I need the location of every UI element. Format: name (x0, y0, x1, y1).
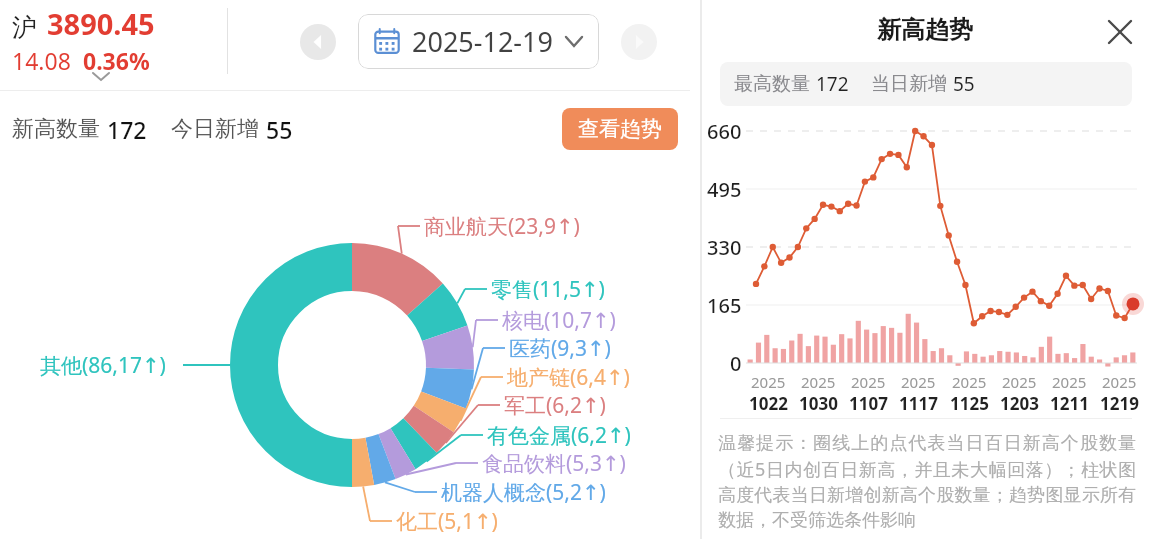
staticText: 2025 (851, 372, 886, 392)
staticText: 新高趋势 (877, 15, 973, 45)
staticText: 1203 (1000, 392, 1039, 415)
staticText: 地产链(6,4↑) (507, 363, 630, 392)
staticText: 55 (953, 71, 975, 97)
staticText: 商业航天(23,9↑) (424, 212, 580, 241)
staticText: 1211 (1050, 392, 1089, 415)
staticText: 660 (707, 118, 742, 145)
staticText: 有色金属(6,2↑) (487, 421, 631, 450)
staticText: 1022 (749, 392, 788, 415)
staticText: 2025 (952, 372, 987, 392)
staticText: 2025 (1052, 372, 1087, 392)
staticText: 1107 (849, 392, 888, 415)
button[interactable]: 查看趋势 (562, 108, 678, 150)
staticText: 军工(6,2↑) (504, 391, 606, 420)
staticText: 新高数量 (12, 115, 100, 143)
staticText: 食品饮料(5,3↑) (482, 449, 626, 478)
staticText: 3890.45 (47, 4, 155, 43)
staticText: 2025 (1002, 372, 1037, 392)
staticText: 14.08 (12, 45, 71, 76)
staticText: 其他(86,17↑) (40, 351, 166, 380)
staticText: 172 (816, 71, 849, 97)
staticText: 2025-12-19 (412, 23, 553, 60)
staticText: 2025 (901, 372, 936, 392)
staticText: 165 (707, 292, 742, 319)
staticText: 查看趋势 (578, 116, 662, 142)
staticText: 330 (707, 234, 742, 261)
staticText: 温馨提示：圈线上的点代表当日百日新高个股数量（近5日内创百日新高，并且未大幅回落… (718, 432, 1136, 531)
staticText: 1219 (1100, 392, 1139, 415)
staticText: 核电(10,7↑) (502, 306, 616, 335)
staticText: 1125 (950, 392, 989, 415)
button[interactable]: Previous day (300, 24, 336, 60)
staticText: 化工(5,1↑) (396, 507, 498, 536)
staticText: 1030 (799, 392, 838, 415)
staticText: 172 (107, 114, 147, 145)
staticText: 沪 (12, 12, 37, 43)
staticText: 0 (730, 350, 742, 377)
staticText: 0.36% (83, 45, 150, 76)
staticText: 1117 (899, 392, 938, 415)
button[interactable]: 2025-12-19 (358, 14, 599, 69)
staticText: 55 (266, 114, 293, 145)
staticText: 医药(9,3↑) (509, 334, 611, 363)
staticText: 495 (707, 176, 742, 203)
staticText: 机器人概念(5,2↑) (441, 478, 606, 507)
staticText: 2025 (801, 372, 836, 392)
button[interactable]: Close (1098, 10, 1142, 54)
staticText: 今日新增 (171, 115, 259, 143)
staticText: 2025 (1102, 372, 1137, 392)
staticText: 最高数量 (734, 72, 810, 96)
staticText: 2025 (751, 372, 786, 392)
staticText: 当日新增 (871, 72, 947, 96)
button[interactable]: Next day (621, 24, 657, 60)
staticText: 零售(11,5↑) (491, 275, 605, 304)
